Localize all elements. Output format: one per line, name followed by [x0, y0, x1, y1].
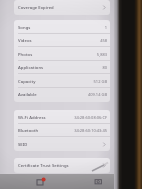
staticText: 80 [102, 65, 107, 70]
staticText: Wi-Fi Address [18, 115, 46, 121]
staticText: 34:28:60:08:06:CF [74, 115, 107, 120]
button[interactable]: Coverage Expired [14, 1, 110, 14]
button[interactable]: Camera [94, 177, 103, 186]
button[interactable]: SEID [14, 138, 110, 151]
button[interactable]: Available [14, 88, 110, 101]
staticText: 34:28:60:10:43:45 [74, 128, 107, 133]
button[interactable]: Videos [14, 34, 110, 47]
button[interactable]: Wi-Fi Address [14, 111, 110, 124]
staticText: Certificate Trust Settings [18, 163, 69, 169]
staticText: Available [18, 92, 37, 98]
staticText: Capacity [18, 79, 36, 85]
staticText: 512 GB [93, 79, 107, 84]
button[interactable]: Bluetooth [14, 124, 110, 137]
staticText: Photos [18, 52, 33, 58]
staticText: Applications [18, 65, 44, 71]
button[interactable]: Capacity [14, 75, 110, 88]
button[interactable]: Certificate Trust Settings [14, 159, 110, 172]
staticText: Bluetooth [18, 128, 39, 134]
staticText: SEID [18, 142, 28, 148]
button[interactable]: App with notifications [36, 177, 46, 187]
staticText: Videos [18, 38, 32, 44]
staticText: 409.14 GB [87, 92, 107, 97]
button[interactable]: Songs [14, 21, 110, 34]
staticText: 458 [100, 38, 107, 43]
staticText: Songs [18, 25, 31, 31]
staticText: 1 [104, 25, 107, 30]
staticText: 5,883 [96, 52, 107, 57]
staticText: Coverage Expired [18, 5, 54, 11]
button[interactable]: Applications [14, 61, 110, 74]
button[interactable]: Photos [14, 48, 110, 61]
